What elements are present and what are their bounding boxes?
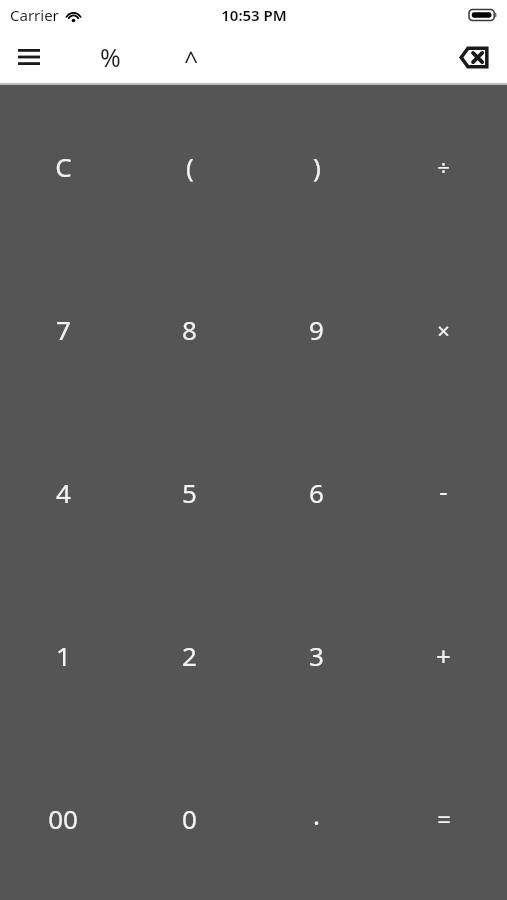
button[interactable]: ^ [169, 35, 213, 79]
button[interactable]: ) [253, 85, 380, 248]
button[interactable]: = [380, 737, 507, 900]
staticText: + [436, 638, 451, 673]
button[interactable]: 2 [126, 574, 253, 737]
staticText: 0 [182, 801, 197, 836]
staticText: ) [313, 149, 321, 184]
button[interactable]: 9 [253, 248, 380, 411]
staticText: 7 [56, 312, 71, 347]
staticText: 1 [56, 638, 71, 673]
staticText: = [437, 802, 451, 835]
button[interactable]: - [380, 411, 507, 574]
staticText: 4 [56, 475, 71, 510]
staticText: 6 [309, 475, 324, 510]
button[interactable]: C [0, 85, 126, 248]
staticText: ÷ [437, 152, 450, 182]
staticText: 5 [182, 475, 197, 510]
button[interactable]: Menu [9, 37, 49, 77]
button[interactable]: 1 [0, 574, 126, 737]
button[interactable]: 3 [253, 574, 380, 737]
button[interactable]: 0 [126, 737, 253, 900]
staticText: ( [186, 149, 194, 184]
staticText: ^ [184, 43, 199, 77]
staticText: 9 [309, 312, 324, 347]
staticText: Carrier [10, 5, 59, 25]
staticText: % [100, 40, 121, 74]
button[interactable]: 7 [0, 248, 126, 411]
button[interactable]: 4 [0, 411, 126, 574]
staticText: 2 [182, 638, 197, 673]
button[interactable]: 6 [253, 411, 380, 574]
staticText: . [313, 797, 320, 832]
staticText: C [55, 149, 72, 184]
button[interactable]: Backspace [453, 36, 495, 78]
button[interactable]: 5 [126, 411, 253, 574]
button[interactable]: ÷ [380, 85, 507, 248]
staticText: × [437, 315, 450, 345]
staticText: 00 [48, 801, 78, 836]
button[interactable]: . [253, 737, 380, 900]
staticText: 8 [182, 312, 197, 347]
button[interactable]: 00 [0, 737, 126, 900]
staticText: - [439, 473, 448, 508]
staticText: 10:53 PM [221, 5, 287, 25]
button[interactable]: ( [126, 85, 253, 248]
button[interactable]: × [380, 248, 507, 411]
button[interactable]: 8 [126, 248, 253, 411]
button[interactable]: % [88, 35, 132, 79]
staticText: 3 [309, 638, 324, 673]
button[interactable]: + [380, 574, 507, 737]
